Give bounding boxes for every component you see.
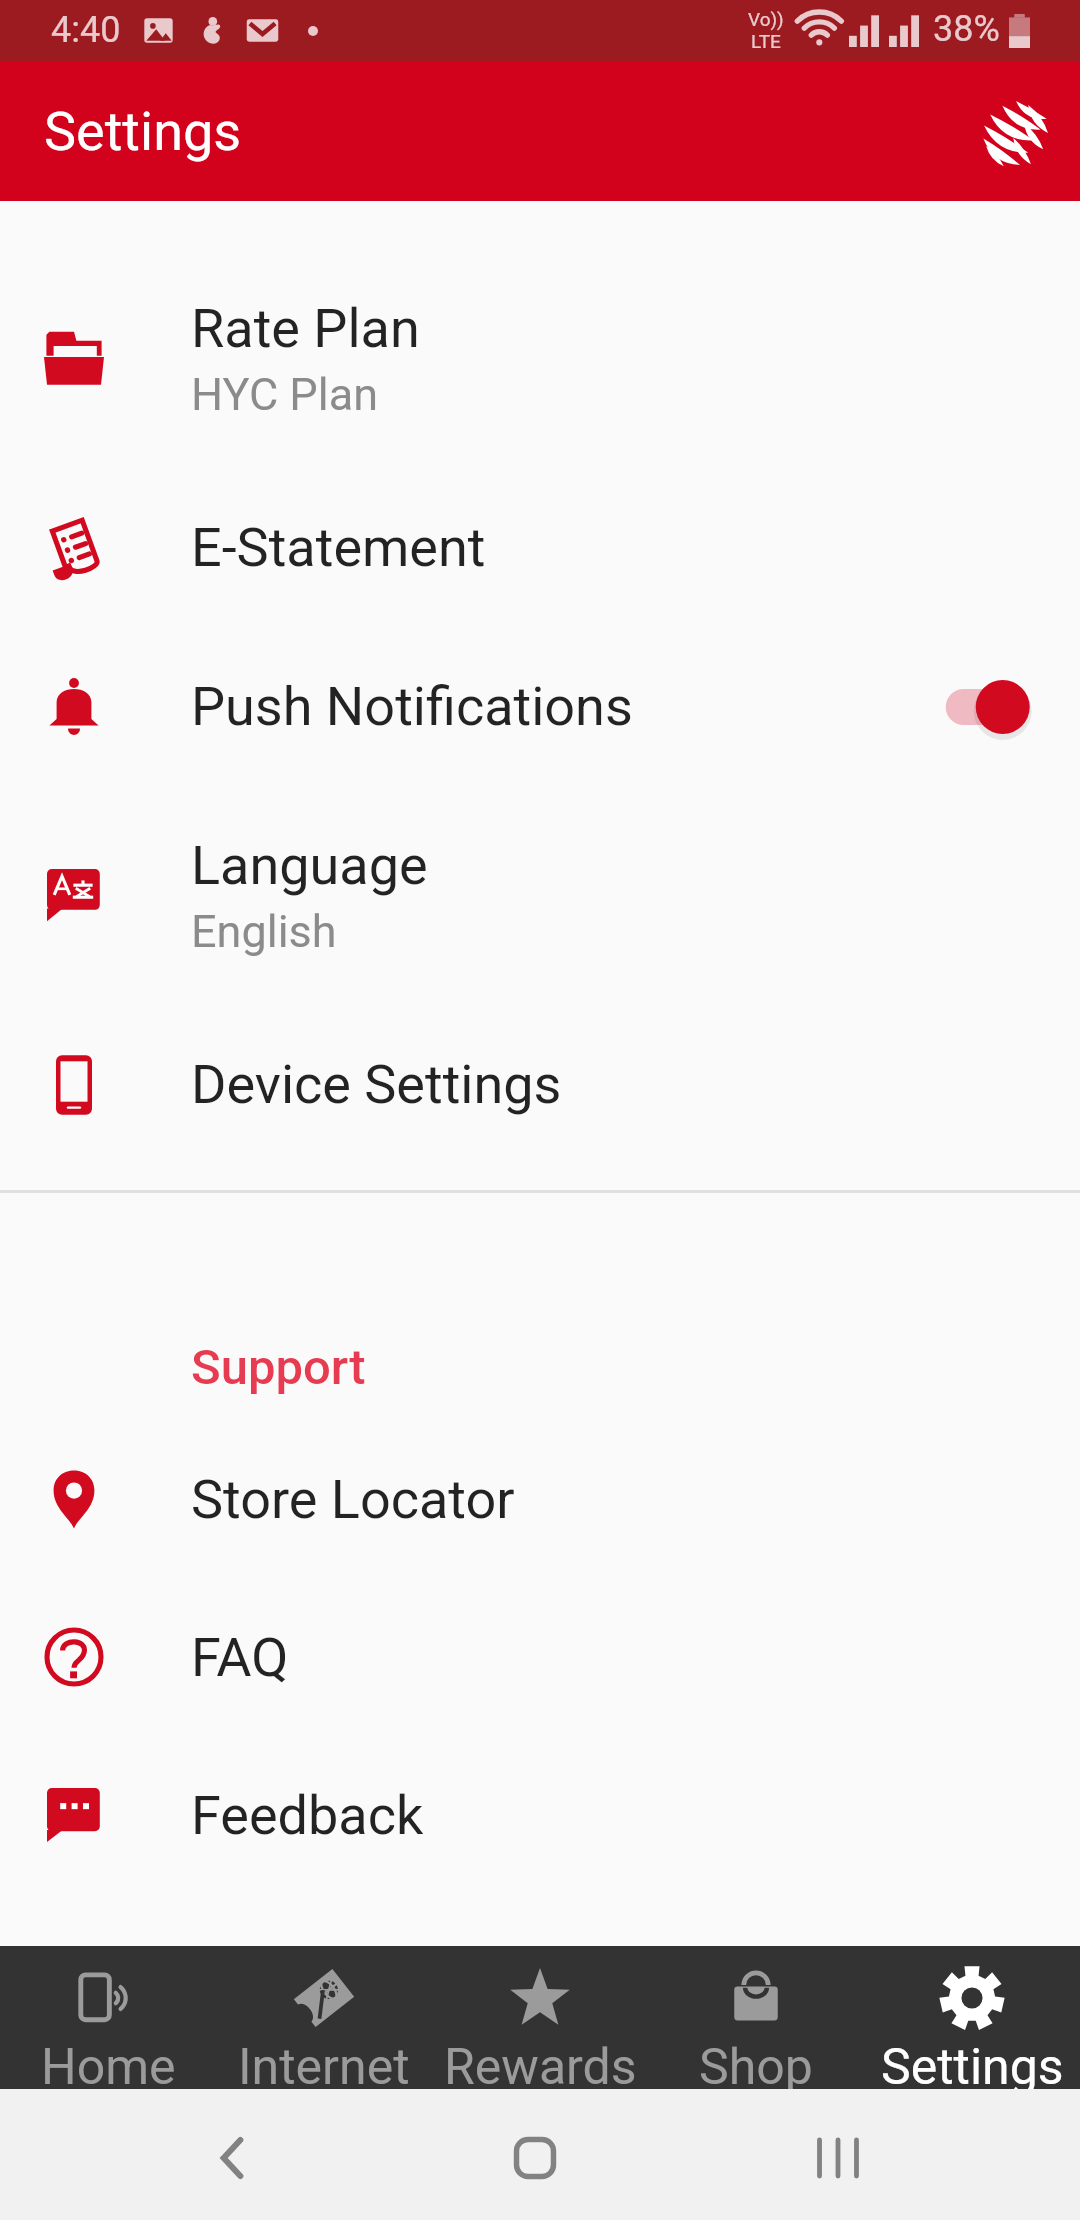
button[interactable]: Language bbox=[0, 786, 1080, 1005]
staticText: Shop bbox=[699, 2038, 813, 2089]
staticText: Language bbox=[191, 834, 428, 897]
button[interactable]: Push notifications toggle bbox=[939, 627, 1035, 786]
staticText: 4:40 bbox=[51, 9, 121, 51]
button[interactable]: E-Statement bbox=[0, 468, 1080, 627]
button[interactable]: Feedback bbox=[0, 1736, 1080, 1894]
button[interactable]: Shop bbox=[648, 1946, 864, 2089]
staticText: HYC Plan bbox=[191, 368, 378, 421]
staticText: Settings bbox=[44, 100, 242, 163]
button[interactable]: Store Locator bbox=[0, 1420, 1080, 1578]
staticText: E-Statement bbox=[191, 516, 486, 579]
staticText: Home bbox=[41, 2038, 176, 2089]
staticText: Push Notifications bbox=[191, 675, 633, 738]
staticText: Rate Plan bbox=[191, 297, 420, 360]
button[interactable]: Ooredoo logo bbox=[982, 101, 1050, 169]
button[interactable]: Settings bbox=[864, 1946, 1080, 2089]
button[interactable]: Back bbox=[188, 2114, 276, 2202]
staticText: Store Locator bbox=[191, 1468, 515, 1531]
staticText: Rewards bbox=[444, 2038, 637, 2089]
button[interactable]: FAQ bbox=[0, 1578, 1080, 1736]
staticText: Internet bbox=[238, 2038, 410, 2089]
button[interactable]: Rate Plan bbox=[0, 249, 1080, 468]
staticText: Support bbox=[191, 1339, 366, 1396]
staticText: English bbox=[191, 905, 337, 958]
button[interactable]: Internet bbox=[216, 1946, 432, 2089]
button[interactable]: Rewards bbox=[432, 1946, 648, 2089]
button[interactable]: Recent apps bbox=[794, 2114, 882, 2202]
button[interactable]: Home bbox=[0, 1946, 216, 2089]
button[interactable]: Home bbox=[491, 2114, 579, 2202]
staticText: Feedback bbox=[191, 1784, 424, 1847]
staticText: Device Settings bbox=[191, 1053, 562, 1116]
staticText: Vo)) bbox=[748, 8, 784, 30]
staticText: 38% bbox=[933, 8, 1000, 50]
staticText: LTE bbox=[751, 30, 781, 52]
button[interactable]: Push Notifications bbox=[0, 627, 1080, 786]
button[interactable]: Device Settings bbox=[0, 1005, 1080, 1164]
staticText: FAQ bbox=[191, 1626, 289, 1689]
staticText: Settings bbox=[881, 2038, 1064, 2089]
